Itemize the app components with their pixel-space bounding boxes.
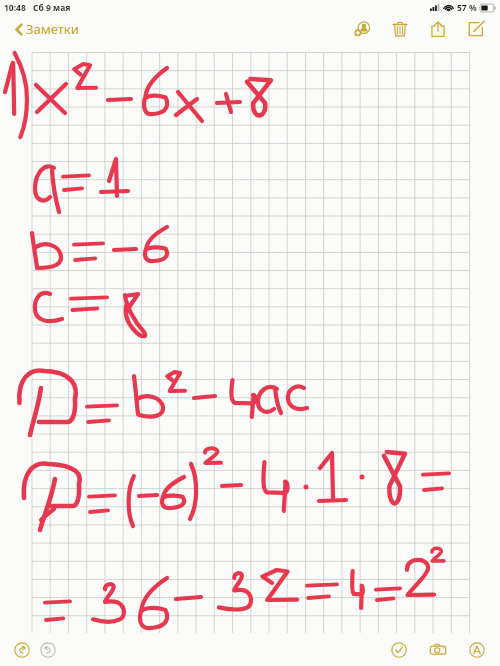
staticText: Сб 9 мая <box>33 2 71 14</box>
staticText: 10:48 <box>4 2 26 14</box>
button[interactable]: Compose <box>463 16 489 42</box>
button[interactable]: Undo <box>9 637 35 663</box>
button[interactable]: Markup <box>464 637 490 663</box>
button[interactable]: Redo <box>35 637 61 663</box>
button[interactable]: Camera <box>425 637 451 663</box>
staticText: Заметки <box>26 20 79 38</box>
button[interactable]: Add people <box>349 16 375 42</box>
button[interactable]: Delete <box>387 16 413 42</box>
staticText: 57 % <box>457 2 477 14</box>
button[interactable]: Заметки <box>0 16 89 42</box>
button[interactable]: Share <box>425 16 451 42</box>
button[interactable]: Done <box>386 637 412 663</box>
